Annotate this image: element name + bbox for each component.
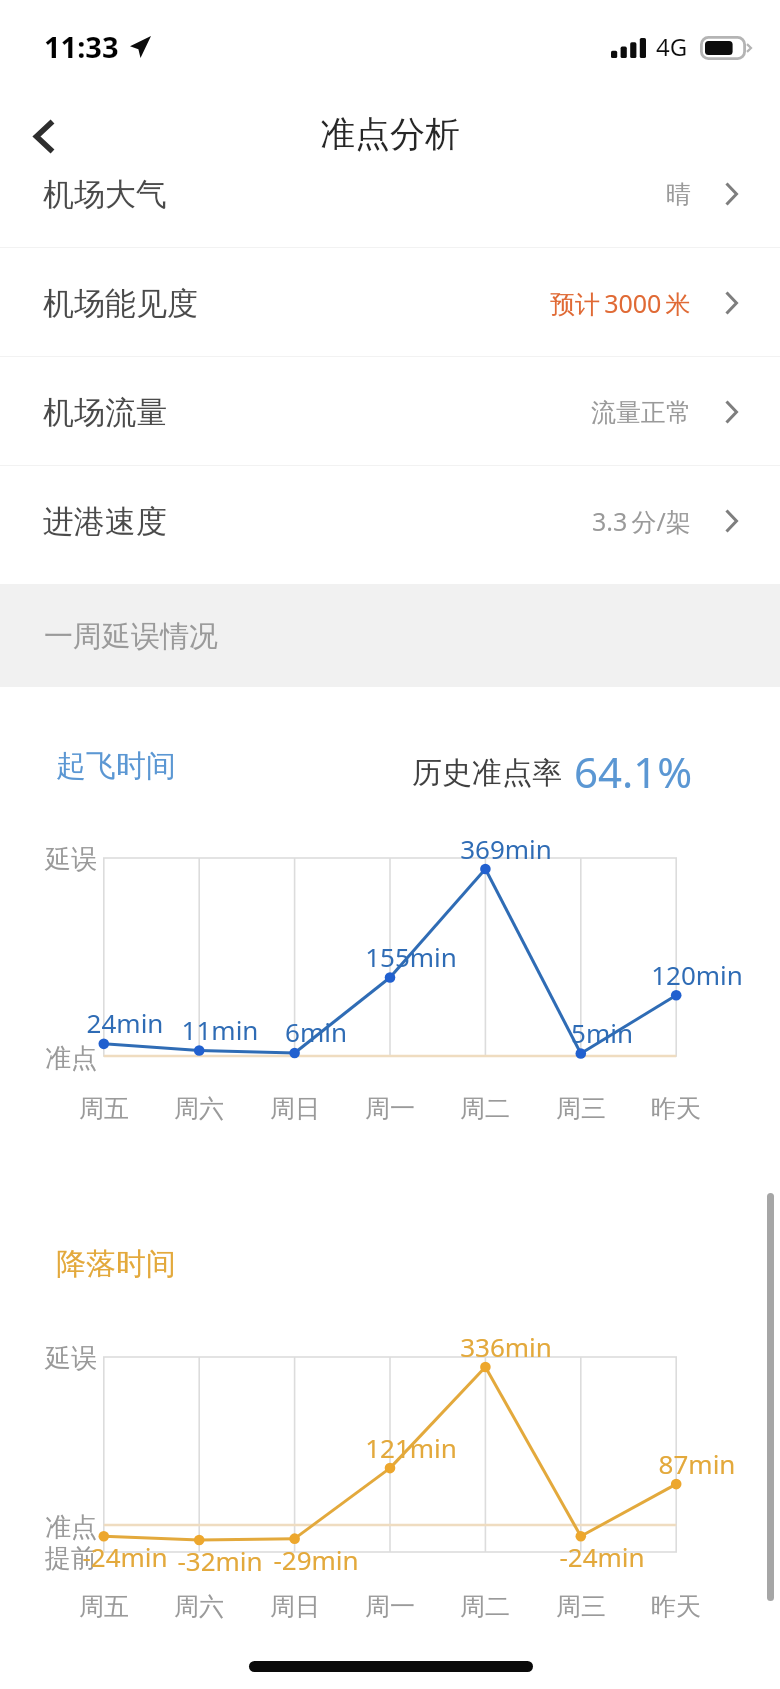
staticText: -32min [140,1543,300,1578]
staticText: -24min [45,1539,205,1574]
staticText: 机场大气 [43,175,167,214]
staticText: 周日 [255,1591,335,1622]
button[interactable]: 机场能见度 [0,250,780,356]
staticText: 机场能见度 [43,284,198,323]
staticText: 准点 [45,1042,97,1075]
staticText: 6min [236,1014,396,1049]
staticText: 周三 [541,1591,621,1622]
staticText: 准点分析 [320,112,460,156]
staticText: 4G [656,30,688,63]
staticText: 周二 [445,1093,525,1124]
staticText: 昨天 [636,1591,716,1622]
staticText: 延误 [45,1342,97,1375]
staticText: 64.1% [574,743,693,800]
staticText: 87min [617,1446,777,1481]
staticText: 5min [522,1015,682,1050]
staticText: 周五 [64,1093,144,1124]
staticText: 一周延误情况 [44,618,218,655]
staticText: 24min [45,1005,205,1040]
staticText: -24min [522,1539,682,1574]
staticText: 369min [426,831,586,866]
staticText: 周一 [350,1093,430,1124]
staticText: 周六 [159,1093,239,1124]
staticText: 昨天 [636,1093,716,1124]
staticText: 周二 [445,1591,525,1622]
staticText: 3.3 分/架 [592,504,691,538]
staticText: 336min [426,1329,586,1364]
staticText: 起飞时间 [56,747,176,785]
staticText: 155min [331,939,491,974]
button[interactable]: 机场大气 [0,141,780,247]
staticText: 11:33 [44,27,119,66]
staticText: 周六 [159,1591,239,1622]
staticText: 进港速度 [43,502,167,541]
staticText: 历史准点率 [412,754,562,792]
staticText: 流量正常 [591,397,691,428]
staticText: 准点 [45,1511,97,1544]
staticText: -29min [236,1542,396,1577]
staticText: 延误 [45,843,97,876]
staticText: 周日 [255,1093,335,1124]
staticText: 周一 [350,1591,430,1622]
staticText: 机场流量 [43,393,167,432]
button[interactable]: 机场流量 [0,359,780,465]
button[interactable]: Back [10,100,80,174]
staticText: 晴 [666,179,691,210]
staticText: 降落时间 [56,1245,176,1283]
staticText: 121min [331,1430,491,1465]
button[interactable]: 进港速度 [0,468,780,574]
staticText: 120min [617,957,777,992]
staticText: 提前 [45,1542,97,1575]
staticText: 周三 [541,1093,621,1124]
staticText: 周五 [64,1591,144,1622]
staticText: 11min [140,1012,300,1047]
staticText: 预计 3000 米 [550,286,691,320]
